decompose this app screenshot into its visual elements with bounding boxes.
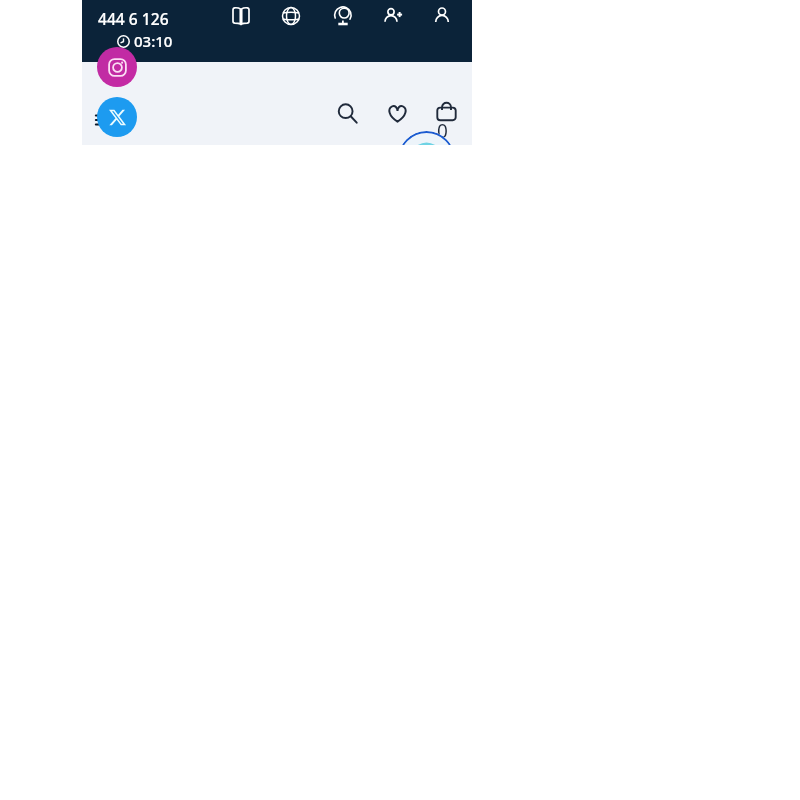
button[interactable]: Menu — [92, 108, 116, 132]
button[interactable]: My account — [428, 2, 456, 30]
button[interactable]: Stores — [329, 2, 357, 30]
button[interactable]: Live support — [398, 131, 455, 145]
button[interactable]: Favourites — [383, 99, 411, 127]
button[interactable]: 444 6 126 — [98, 8, 169, 29]
button[interactable]: Cart — [432, 99, 462, 129]
staticText: 0 — [437, 118, 448, 144]
button[interactable]: Language — [277, 2, 305, 30]
button[interactable]: Instagram — [97, 47, 137, 87]
button[interactable]: 03:10 — [117, 31, 173, 51]
button[interactable]: Catalogue — [227, 2, 255, 30]
button[interactable]: Search — [333, 99, 361, 127]
button[interactable]: X — [97, 97, 137, 137]
staticText: 03:10 — [134, 31, 173, 51]
staticText: 444 6 126 — [98, 8, 169, 29]
button[interactable]: Register — [379, 2, 407, 30]
